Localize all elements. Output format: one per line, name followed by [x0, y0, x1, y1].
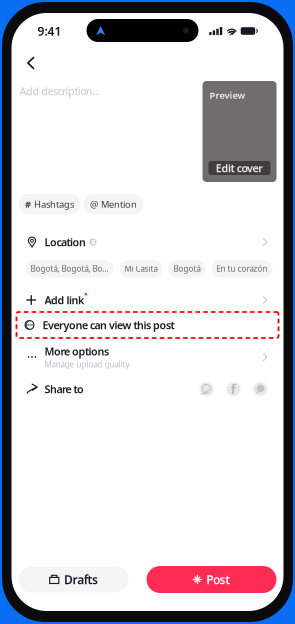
button[interactable]: @ — [83, 194, 143, 214]
staticText: Add link — [44, 293, 84, 307]
staticText: Post — [206, 571, 230, 587]
staticText: Mention — [101, 198, 137, 210]
button[interactable]: Edit cover — [208, 161, 270, 175]
staticText: Manage upload quality — [44, 359, 129, 370]
button[interactable]: Bogotá, Bogotá, Bo... — [25, 260, 113, 277]
button[interactable]: Share to WhatsApp — [199, 382, 213, 396]
button[interactable]: Share to Messages — [253, 382, 267, 396]
staticText: Add description... — [19, 84, 100, 98]
staticText: Bogotá — [173, 263, 200, 274]
button[interactable]: Bogotá — [168, 260, 205, 277]
button[interactable]: More options — [18, 342, 275, 372]
button[interactable]: Everyone can view this post — [16, 312, 278, 338]
staticText: Location — [44, 235, 86, 249]
button[interactable]: Post — [146, 566, 276, 593]
button[interactable]: Back — [17, 51, 43, 75]
button[interactable]: Share to Facebook — [226, 382, 240, 396]
staticText: Mi Casita — [124, 263, 157, 274]
staticText: Everyone can view this post — [42, 318, 174, 332]
button[interactable]: Location — [18, 229, 275, 255]
staticText: @ — [90, 198, 98, 210]
staticText: More options — [44, 344, 109, 359]
staticText: f — [231, 381, 236, 397]
staticText: Drafts — [64, 571, 98, 587]
button[interactable]: En tu corazón — [211, 260, 272, 277]
button[interactable]: Add link — [18, 287, 275, 313]
staticText: # — [25, 198, 31, 210]
staticText: Edit cover — [216, 161, 263, 175]
staticText: Preview — [209, 89, 245, 101]
staticText: Bogotá, Bogotá, Bo... — [30, 263, 108, 274]
button[interactable]: Drafts — [18, 566, 128, 592]
staticText: Hashtags — [34, 198, 74, 210]
staticText: Share to — [44, 382, 84, 396]
button[interactable]: Mi Casita — [119, 260, 162, 277]
staticText: En tu corazón — [216, 263, 267, 274]
staticText: 9:41 — [37, 23, 61, 39]
button[interactable]: # — [18, 194, 80, 214]
